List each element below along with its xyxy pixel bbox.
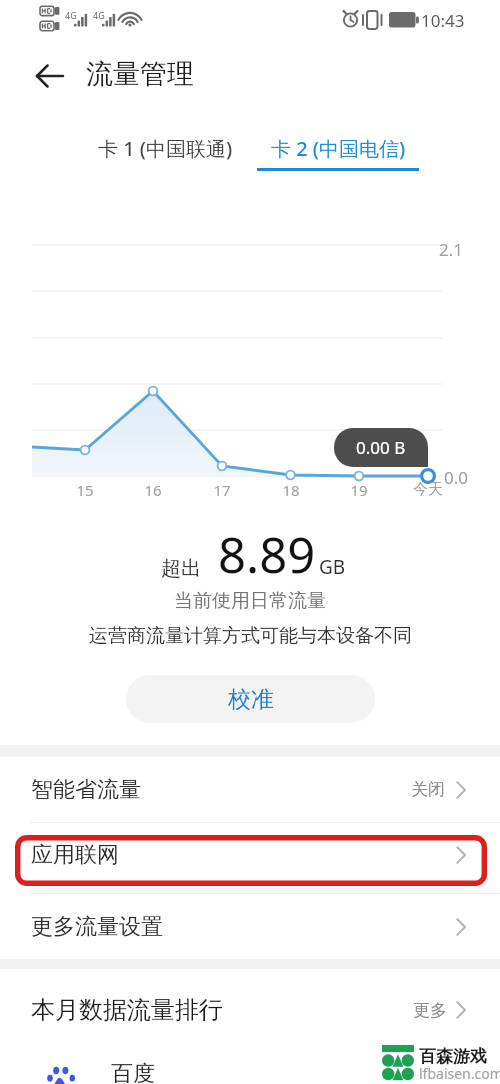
staticText: 校准 (228, 685, 274, 714)
button[interactable]: 更多 (413, 985, 466, 1035)
staticText: 2.1 (439, 238, 464, 261)
staticText: 16 (128, 480, 178, 500)
staticText: 19 (334, 480, 384, 500)
button[interactable]: 应用联网 (0, 823, 500, 887)
staticText: 百度 (111, 1060, 155, 1084)
button[interactable]: 卡 1 (中国联通) (72, 124, 258, 172)
staticText: 8.89 (218, 521, 316, 588)
staticText: 18 (266, 480, 316, 500)
staticText: 更多流量设置 (31, 913, 163, 941)
staticText: 智能省流量 (31, 776, 141, 804)
button[interactable]: 百度 (0, 1053, 500, 1084)
staticText: 0.00 B (356, 436, 406, 459)
button[interactable]: 校准 (126, 675, 375, 723)
staticText: 4G (65, 9, 77, 21)
staticText: 本月数据流量排行 (31, 995, 223, 1025)
staticText: 17 (197, 480, 247, 500)
staticText: 10:43 (421, 9, 465, 32)
staticText: 卡 2 (中国电信) (271, 135, 406, 162)
button[interactable]: Back (28, 54, 72, 98)
button[interactable]: 智能省流量 (0, 757, 500, 822)
staticText: 卡 1 (中国联通) (98, 135, 233, 162)
button[interactable]: 更多流量设置 (0, 894, 500, 959)
staticText: 百森游戏 (419, 1046, 487, 1067)
staticText: 当前使用日常流量 (174, 589, 326, 613)
staticText: 超出 (161, 556, 201, 581)
staticText: 应用联网 (31, 841, 119, 869)
staticText: 关闭 (411, 779, 445, 800)
staticText: 流量管理 (86, 57, 194, 91)
staticText: GB (319, 554, 346, 580)
staticText: lfbaisen.com (419, 1064, 500, 1083)
staticText: 0.0 (444, 466, 469, 489)
staticText: 15 (60, 480, 110, 500)
staticText: 运营商流量计算方式可能与本设备不同 (89, 624, 412, 648)
button[interactable]: 卡 2 (中国电信) (255, 124, 421, 172)
staticText: 更多 (413, 1000, 447, 1021)
staticText: 今天 (403, 480, 453, 499)
staticText: 4G (93, 9, 105, 21)
